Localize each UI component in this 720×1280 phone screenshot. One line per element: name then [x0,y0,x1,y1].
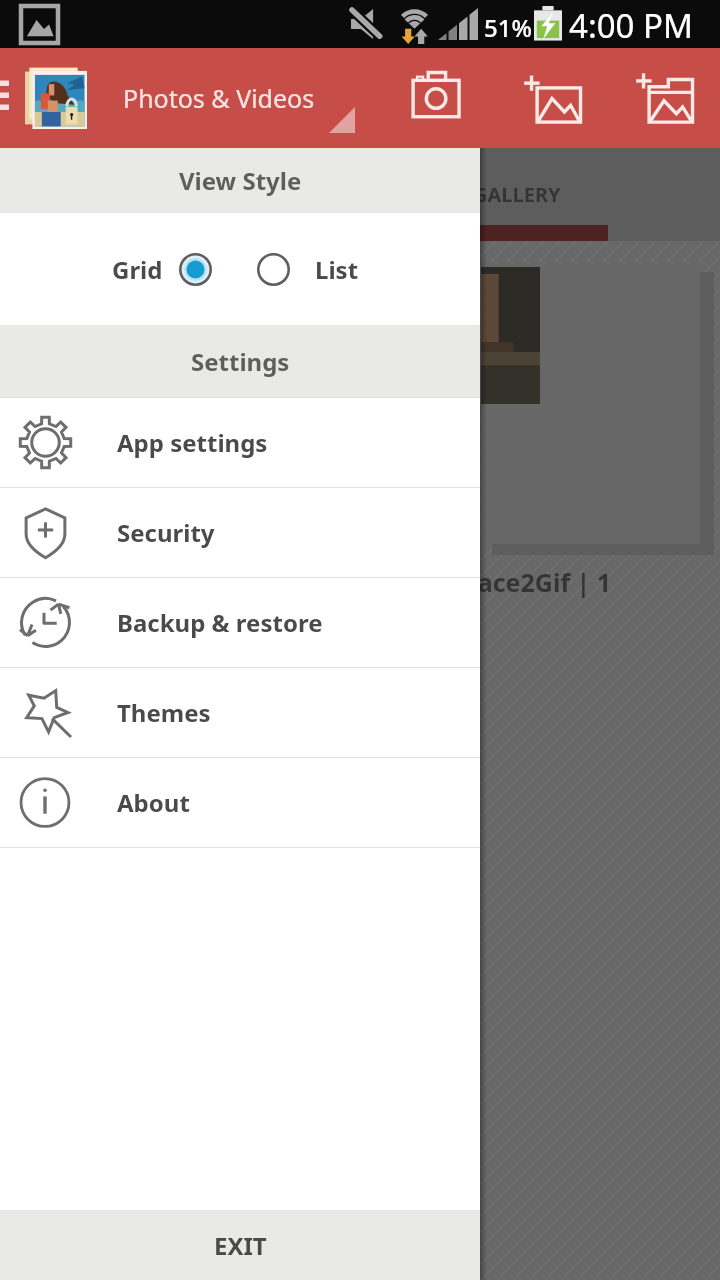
staticText: List [315,253,359,286]
staticText: Grid [112,253,163,286]
staticText: Photos & Videos [123,81,315,115]
button[interactable]: Add photo [500,48,604,148]
staticText: View Style [179,164,302,197]
staticText: Themes [117,696,211,729]
staticText: 4:00 PM [569,3,693,48]
button[interactable]: Camera [388,48,492,148]
staticText: App settings [117,426,268,459]
staticText: GALLERY [473,181,561,208]
button[interactable]: Open navigation drawer [0,78,9,118]
staticText: Security [117,516,215,549]
button[interactable] [245,241,301,297]
button[interactable]: Add folder [612,48,716,148]
button[interactable]: About [0,758,480,847]
button[interactable]: List [315,213,411,325]
staticText: Settings [191,345,290,378]
button[interactable]: Themes [0,668,480,757]
button[interactable]: Backup & restore [0,578,480,667]
button[interactable]: Grid [67,213,163,325]
button[interactable]: Security [0,488,480,577]
staticText: EXIT [214,1229,267,1262]
staticText: About [117,786,190,819]
button[interactable] [167,241,223,297]
button[interactable]: App settings [0,398,480,487]
staticText: 51% [484,11,532,44]
staticText: Face2Gif | 1 [464,565,612,599]
button[interactable]: EXIT [0,1210,480,1280]
staticText: Backup & restore [117,606,323,639]
